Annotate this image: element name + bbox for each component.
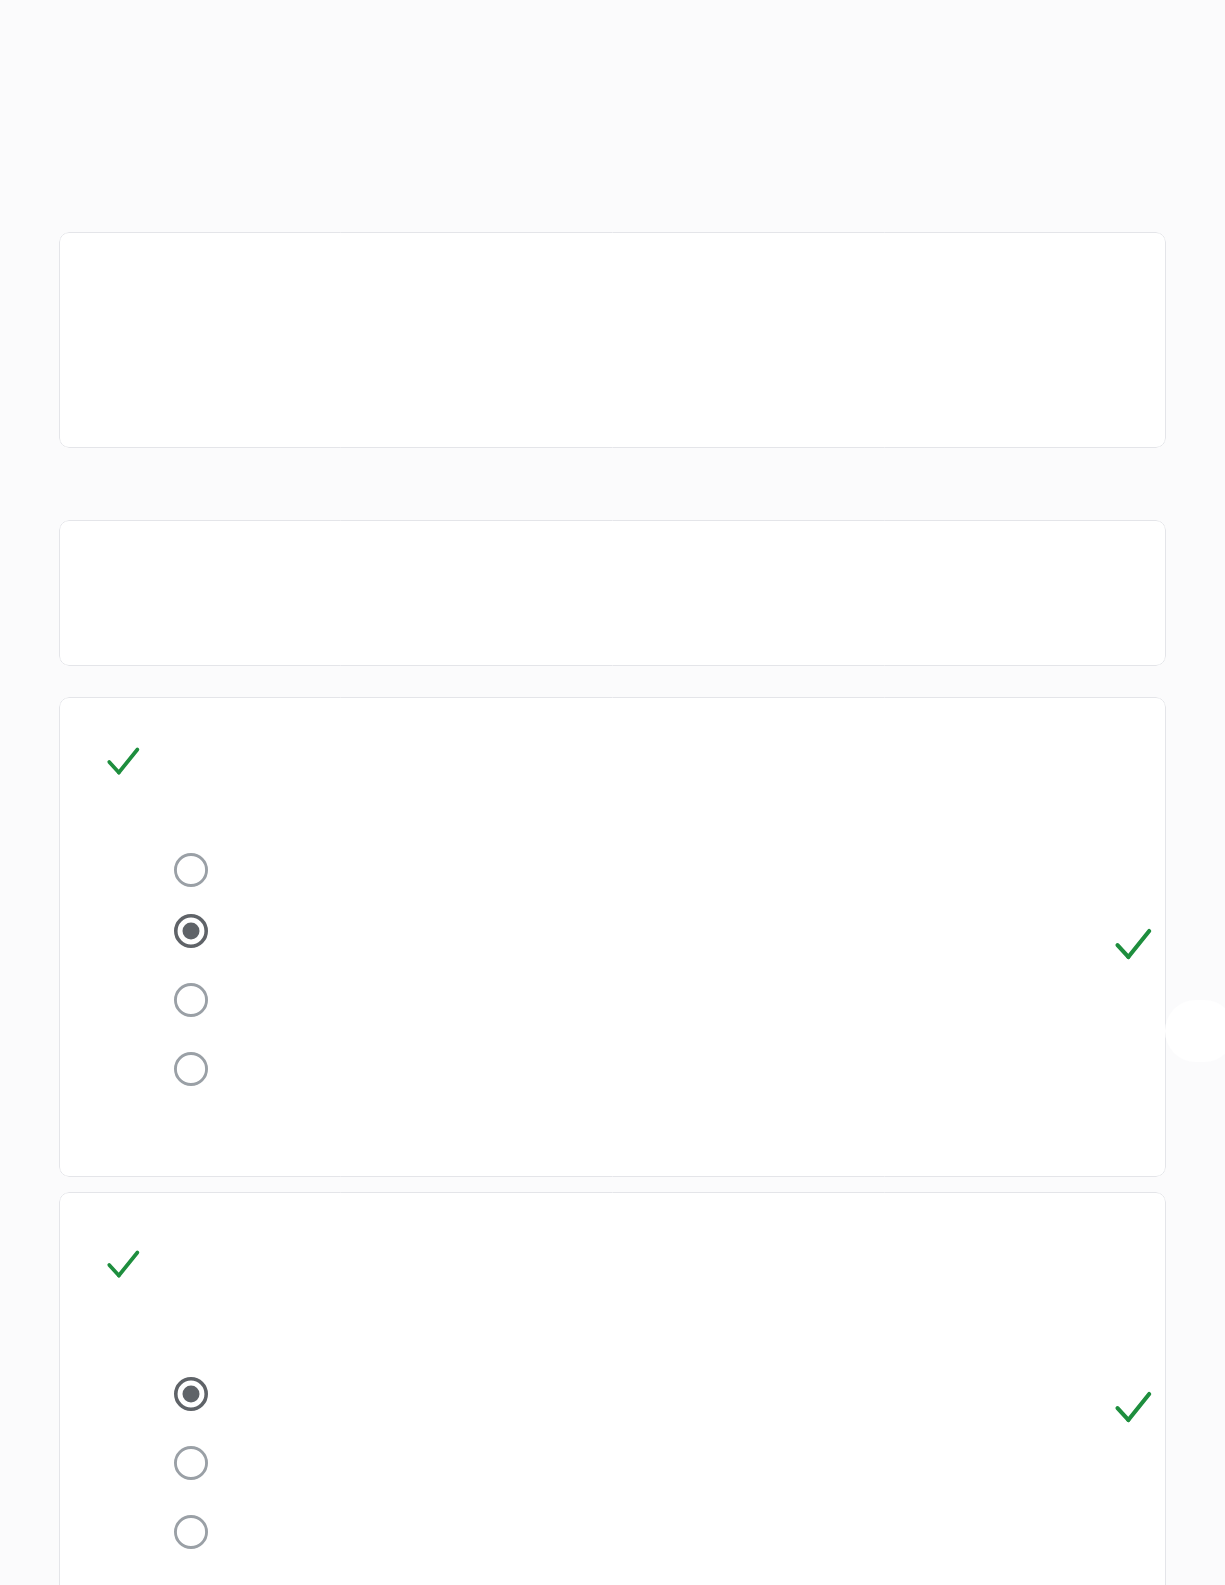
button[interactable]: Option 1 (174, 853, 208, 887)
button[interactable]: Option 3 (174, 983, 208, 1017)
button[interactable]: Option 1, selected (174, 1377, 208, 1411)
button[interactable]: Option 2, selected (174, 914, 208, 948)
button[interactable]: Option 4 (174, 1052, 208, 1086)
button[interactable]: Option 1 (59, 697, 1166, 1177)
button[interactable]: Option 3 (174, 1515, 208, 1549)
button[interactable]: Option 2 (174, 1446, 208, 1480)
button[interactable] (59, 520, 1166, 666)
button[interactable]: Option 1, selected (59, 1192, 1166, 1585)
button[interactable]: More options (1165, 1000, 1225, 1062)
